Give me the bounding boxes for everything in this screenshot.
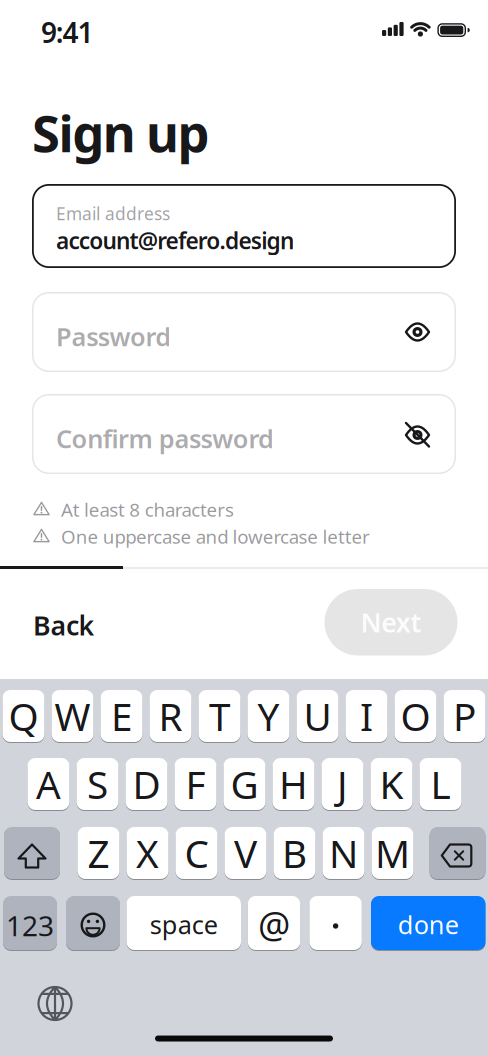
button[interactable]: K: [370, 758, 412, 810]
button[interactable]: J: [321, 758, 363, 810]
button[interactable]: T: [198, 690, 240, 742]
staticText: Back: [33, 607, 94, 643]
button[interactable]: X: [126, 827, 168, 879]
staticText: Password: [56, 319, 171, 353]
staticText: L: [430, 758, 450, 810]
button[interactable]: O: [394, 690, 436, 742]
button[interactable]: M: [371, 827, 413, 879]
button[interactable]: Confirm password: [32, 394, 456, 474]
staticText: R: [158, 690, 182, 742]
button[interactable]: G: [223, 758, 265, 810]
staticText: U: [303, 690, 331, 742]
staticText: Confirm password: [56, 421, 274, 455]
button[interactable]: Q: [2, 690, 44, 742]
button[interactable]: C: [175, 827, 217, 879]
staticText: D: [132, 758, 160, 810]
staticText: account@refero.design: [56, 225, 294, 256]
staticText: J: [337, 758, 348, 810]
button[interactable]: U: [296, 690, 338, 742]
button[interactable]: D: [125, 758, 167, 810]
staticText: K: [379, 758, 403, 810]
staticText: W: [54, 690, 90, 742]
staticText: M: [375, 827, 410, 879]
button[interactable]: space: [126, 896, 241, 950]
button[interactable]: V: [224, 827, 266, 879]
staticText: At least 8 characters: [61, 497, 234, 522]
staticText: Next: [360, 604, 421, 640]
button[interactable]: N: [322, 827, 364, 879]
staticText: done: [398, 908, 459, 941]
button[interactable]: R: [149, 690, 191, 742]
button[interactable]: 123: [3, 896, 57, 950]
staticText: Email address: [56, 202, 170, 225]
button[interactable]: F: [174, 758, 216, 810]
button[interactable]: Back: [33, 607, 94, 643]
button[interactable]: Email address: [32, 184, 456, 268]
button[interactable]: W: [51, 690, 93, 742]
button[interactable]: Password: [32, 292, 456, 372]
button[interactable]: done: [371, 896, 485, 950]
button[interactable]: @: [248, 896, 300, 950]
staticText: Sign up: [32, 99, 210, 166]
button[interactable]: E: [100, 690, 142, 742]
staticText: T: [209, 690, 230, 742]
button[interactable]: Show password: [392, 307, 442, 357]
staticText: O: [400, 690, 430, 742]
staticText: 9:41: [41, 13, 93, 51]
staticText: X: [136, 827, 159, 879]
staticText: Z: [87, 827, 109, 879]
staticText: B: [282, 827, 307, 879]
button[interactable]: Delete: [429, 827, 485, 879]
staticText: H: [279, 758, 308, 810]
button[interactable]: B: [273, 827, 315, 879]
staticText: C: [184, 827, 208, 879]
button[interactable]: Next: [324, 589, 457, 655]
staticText: N: [329, 827, 358, 879]
staticText: A: [36, 758, 61, 810]
staticText: space: [150, 908, 218, 941]
button[interactable]: Show password: [392, 410, 442, 460]
staticText: F: [185, 758, 205, 810]
staticText: @: [258, 900, 290, 948]
button[interactable]: L: [419, 758, 461, 810]
button[interactable]: Shift: [4, 827, 60, 879]
button[interactable]: S: [76, 758, 118, 810]
button[interactable]: A: [27, 758, 69, 810]
staticText: 123: [6, 907, 54, 944]
staticText: S: [87, 758, 108, 810]
staticText: G: [230, 758, 258, 810]
staticText: One uppercase and lowercase letter: [61, 524, 370, 549]
button[interactable]: Z: [77, 827, 119, 879]
staticText: I: [360, 690, 373, 742]
staticText: Y: [257, 690, 279, 742]
button[interactable]: H: [272, 758, 314, 810]
staticText: E: [111, 690, 132, 742]
staticText: V: [234, 827, 257, 879]
button[interactable]: I: [345, 690, 387, 742]
staticText: P: [453, 690, 476, 742]
staticText: Q: [8, 690, 38, 742]
button[interactable]: Period: [309, 896, 362, 950]
button[interactable]: Next keyboard: [27, 975, 83, 1031]
button[interactable]: Emoji: [66, 896, 120, 950]
button[interactable]: P: [443, 690, 485, 742]
button[interactable]: Y: [247, 690, 289, 742]
